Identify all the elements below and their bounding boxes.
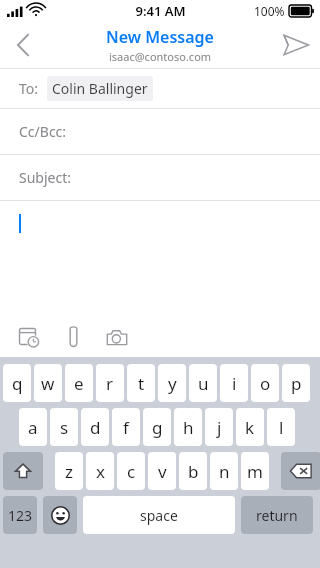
staticText: j xyxy=(217,416,222,439)
button[interactable] xyxy=(0,201,320,316)
button[interactable]: Send xyxy=(272,22,320,68)
staticText: f xyxy=(123,416,129,439)
staticText: n xyxy=(219,460,230,483)
staticText: t xyxy=(138,372,145,395)
button[interactable]: p xyxy=(282,364,310,402)
button[interactable]: j xyxy=(205,408,233,446)
staticText: m xyxy=(247,460,263,483)
button[interactable]: y xyxy=(158,364,186,402)
button[interactable]: x xyxy=(86,452,114,490)
staticText: h xyxy=(183,416,194,439)
button[interactable]: k xyxy=(236,408,264,446)
staticText: b xyxy=(188,460,199,483)
button[interactable]: h xyxy=(174,408,202,446)
staticText: Cc/Bcc: xyxy=(19,122,67,141)
button[interactable]: i xyxy=(220,364,248,402)
staticText: a xyxy=(28,416,38,439)
staticText: e xyxy=(74,372,84,395)
button[interactable]: q xyxy=(3,364,31,402)
staticText: p xyxy=(291,372,302,395)
button[interactable]: d xyxy=(81,408,109,446)
staticText: s xyxy=(60,416,69,439)
staticText: space xyxy=(140,506,178,525)
button[interactable]: Emoji xyxy=(43,496,77,534)
button[interactable]: Attach file xyxy=(56,320,90,354)
staticText: To: xyxy=(19,79,39,98)
staticText: x xyxy=(96,460,105,483)
staticText: g xyxy=(152,416,163,439)
staticText: d xyxy=(90,416,101,439)
staticText: New Message xyxy=(106,26,214,48)
button[interactable]: Cc/Bcc: xyxy=(0,109,320,154)
staticText: l xyxy=(279,416,284,439)
button[interactable]: g xyxy=(143,408,171,446)
button[interactable]: space xyxy=(83,496,235,534)
button[interactable]: t xyxy=(127,364,155,402)
staticText: q xyxy=(12,372,23,395)
button[interactable]: m xyxy=(241,452,269,490)
staticText: r xyxy=(106,372,114,395)
staticText: 123 xyxy=(8,506,33,525)
button[interactable]: s xyxy=(50,408,78,446)
button[interactable]: w xyxy=(34,364,62,402)
button[interactable]: o xyxy=(251,364,279,402)
button[interactable]: f xyxy=(112,408,140,446)
button[interactable]: To: xyxy=(0,69,320,108)
button[interactable]: z xyxy=(55,452,83,490)
button[interactable]: v xyxy=(148,452,176,490)
button[interactable]: l xyxy=(267,408,295,446)
staticText: 100% xyxy=(254,3,285,19)
staticText: z xyxy=(65,460,73,483)
staticText: i xyxy=(232,372,237,395)
button[interactable]: b xyxy=(179,452,207,490)
button[interactable]: c xyxy=(117,452,145,490)
staticText: k xyxy=(245,416,255,439)
staticText: o xyxy=(260,372,271,395)
button[interactable]: Take photo xyxy=(100,320,134,354)
staticText: w xyxy=(41,372,55,395)
button[interactable]: Subject: xyxy=(0,155,320,200)
staticText: u xyxy=(198,372,209,395)
button[interactable]: Back xyxy=(0,22,46,68)
staticText: v xyxy=(158,460,167,483)
staticText: return xyxy=(256,506,298,525)
button[interactable]: 123 xyxy=(3,496,37,534)
button[interactable]: Backspace xyxy=(281,452,320,490)
button[interactable]: Calendar availability xyxy=(12,320,46,354)
button[interactable]: r xyxy=(96,364,124,402)
button[interactable]: return xyxy=(241,496,313,534)
staticText: c xyxy=(127,460,136,483)
button[interactable]: u xyxy=(189,364,217,402)
button[interactable]: n xyxy=(210,452,238,490)
staticText: Subject: xyxy=(19,168,71,187)
button[interactable]: Shift xyxy=(3,452,43,490)
button[interactable]: a xyxy=(19,408,47,446)
staticText: isaac@contoso.com xyxy=(109,49,212,64)
staticText: y xyxy=(168,372,177,395)
button[interactable]: e xyxy=(65,364,93,402)
staticText: Colin Ballinger xyxy=(52,79,148,98)
staticText: 9:41 AM xyxy=(135,2,186,20)
